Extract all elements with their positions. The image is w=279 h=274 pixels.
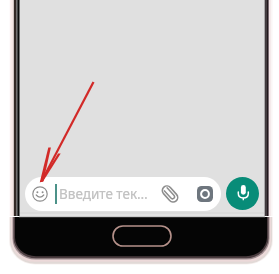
staticText: Введите тек… <box>59 185 148 203</box>
button[interactable]: Emoji <box>32 186 48 202</box>
button[interactable]: Camera <box>197 186 213 202</box>
button[interactable]: Emoji <box>25 177 221 211</box>
button[interactable]: Voice message <box>226 177 259 210</box>
button[interactable]: Attach <box>162 186 178 202</box>
